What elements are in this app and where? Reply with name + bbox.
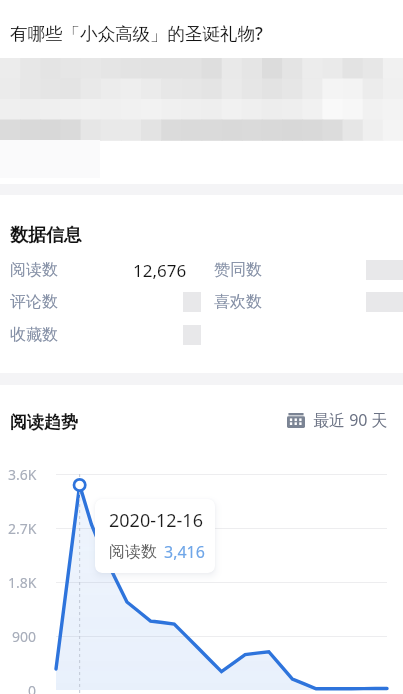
staticText: 阅读数 — [109, 542, 157, 562]
staticText: 喜欢数 — [214, 292, 262, 312]
staticText: 有哪些「小众高级」的圣诞礼物? — [10, 21, 263, 45]
button[interactable]: 喜欢数 — [214, 286, 403, 318]
button[interactable]: 赞同数 — [214, 254, 403, 286]
staticText: 3,416 — [164, 541, 205, 563]
staticText: 2.7K — [8, 519, 37, 538]
staticText: 12,676 — [133, 259, 187, 282]
staticText: 2020-12-16 — [109, 508, 203, 533]
staticText: 1.8K — [8, 573, 37, 592]
other: Date range — [287, 413, 305, 428]
staticText: 900 — [12, 627, 37, 646]
button[interactable]: 收藏数 — [10, 319, 201, 351]
staticText: 评论数 — [10, 292, 58, 312]
staticText: 数据信息 — [10, 224, 82, 247]
staticText: 收藏数 — [10, 325, 58, 345]
button[interactable]: 评论数 — [10, 286, 201, 318]
staticText: 阅读数 — [10, 260, 58, 280]
staticText: 赞同数 — [214, 260, 262, 280]
staticText: 阅读趋势 — [10, 412, 78, 433]
staticText: 最近 90 天 — [313, 409, 388, 431]
staticText: 3.6K — [8, 465, 37, 484]
staticText: 0 — [28, 681, 37, 694]
button[interactable]: Date range — [287, 408, 388, 432]
button[interactable]: 阅读数 — [10, 254, 196, 286]
